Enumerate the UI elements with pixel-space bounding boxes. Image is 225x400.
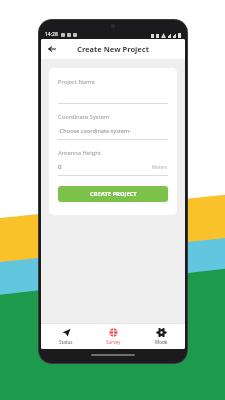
- staticText: Status: [59, 339, 73, 345]
- staticText: CREATE PROJECT: [90, 190, 137, 198]
- button[interactable]: Back: [44, 41, 60, 57]
- staticText: 14:28: [45, 31, 58, 38]
- button[interactable]: Mode: [138, 323, 184, 349]
- staticText: -Choose coordinate system-: [58, 127, 132, 135]
- button[interactable]: Status: [43, 323, 89, 349]
- staticText: Coordinate System: [58, 113, 110, 121]
- staticText: Meters: [152, 164, 168, 170]
- staticText: Antenna Height: [58, 149, 101, 157]
- button[interactable]: Survey: [90, 323, 136, 349]
- staticText: Survey: [106, 339, 121, 345]
- staticText: Project Name: [58, 78, 95, 86]
- button[interactable]: CREATE PROJECT: [58, 186, 168, 202]
- staticText: 0: [58, 163, 62, 171]
- staticText: Create New Project: [77, 44, 149, 54]
- staticText: Mode: [155, 339, 168, 345]
